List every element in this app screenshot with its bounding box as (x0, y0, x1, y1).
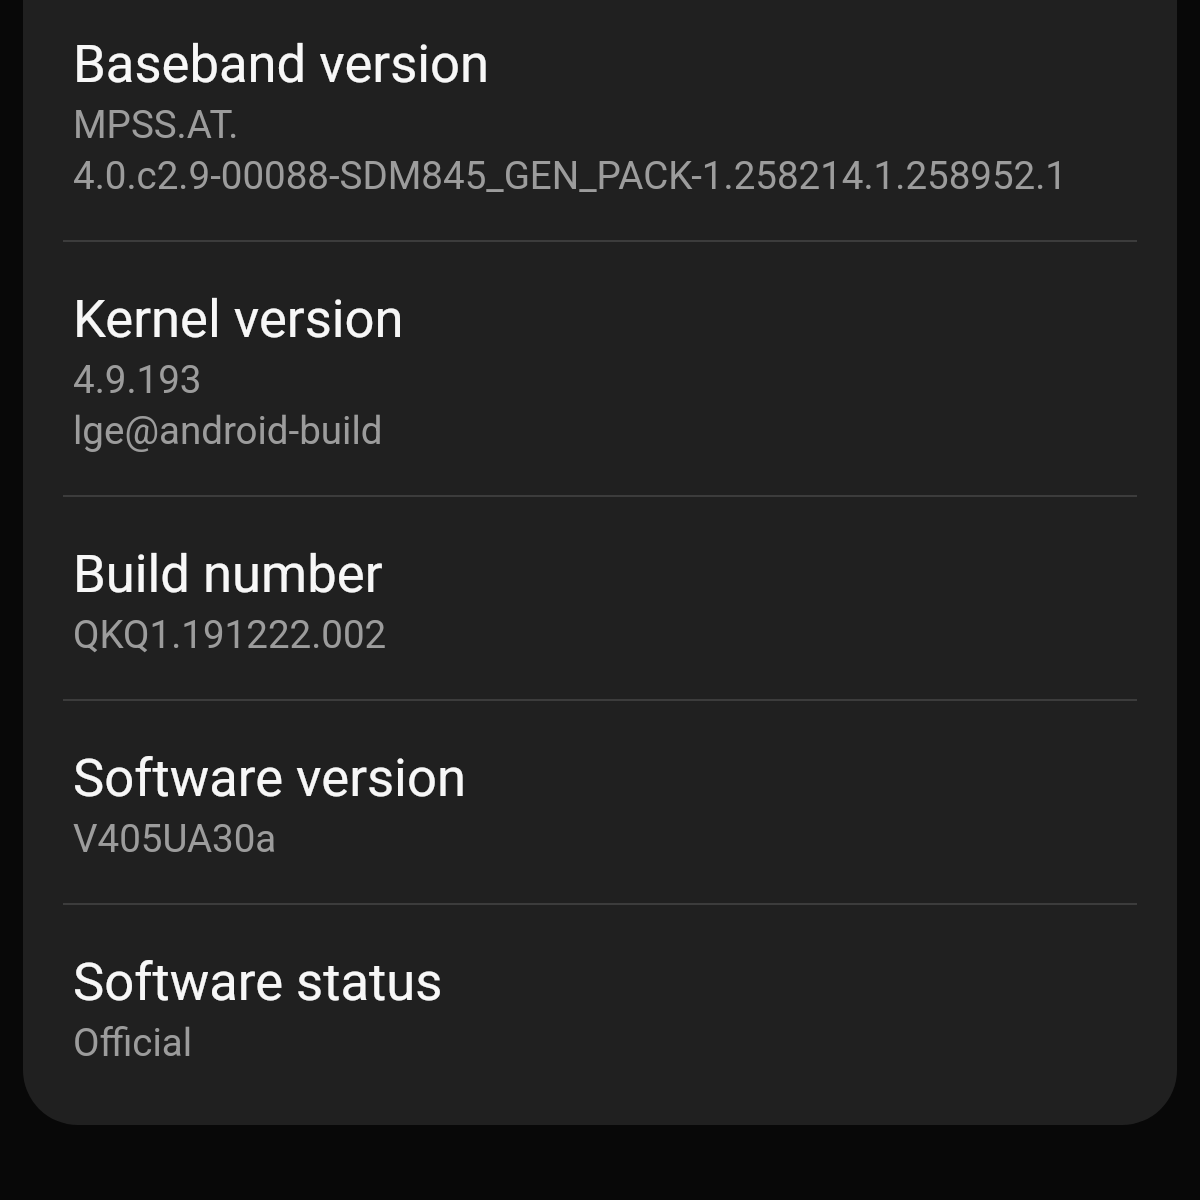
staticText: MPSS.AT. 4.0.c2.9-00088-SDM845_GEN_PACK-… (73, 102, 1068, 198)
staticText: Official (73, 1020, 193, 1065)
staticText: Software version (73, 747, 466, 809)
button[interactable]: Software version (23, 701, 1177, 903)
staticText: V405UA30a (73, 816, 277, 861)
staticText: Kernel version (73, 288, 404, 350)
staticText: Software status (73, 951, 443, 1013)
staticText: Baseband version (73, 33, 490, 95)
button[interactable]: Software status (23, 905, 1177, 1107)
button[interactable]: Baseband version (23, 0, 1177, 240)
button[interactable]: Kernel version (23, 242, 1177, 495)
staticText: QKQ1.191222.002 (73, 612, 387, 657)
staticText: 4.9.193 lge@android-build (73, 357, 383, 453)
button[interactable]: Build number (23, 497, 1177, 699)
staticText: Build number (73, 543, 383, 605)
